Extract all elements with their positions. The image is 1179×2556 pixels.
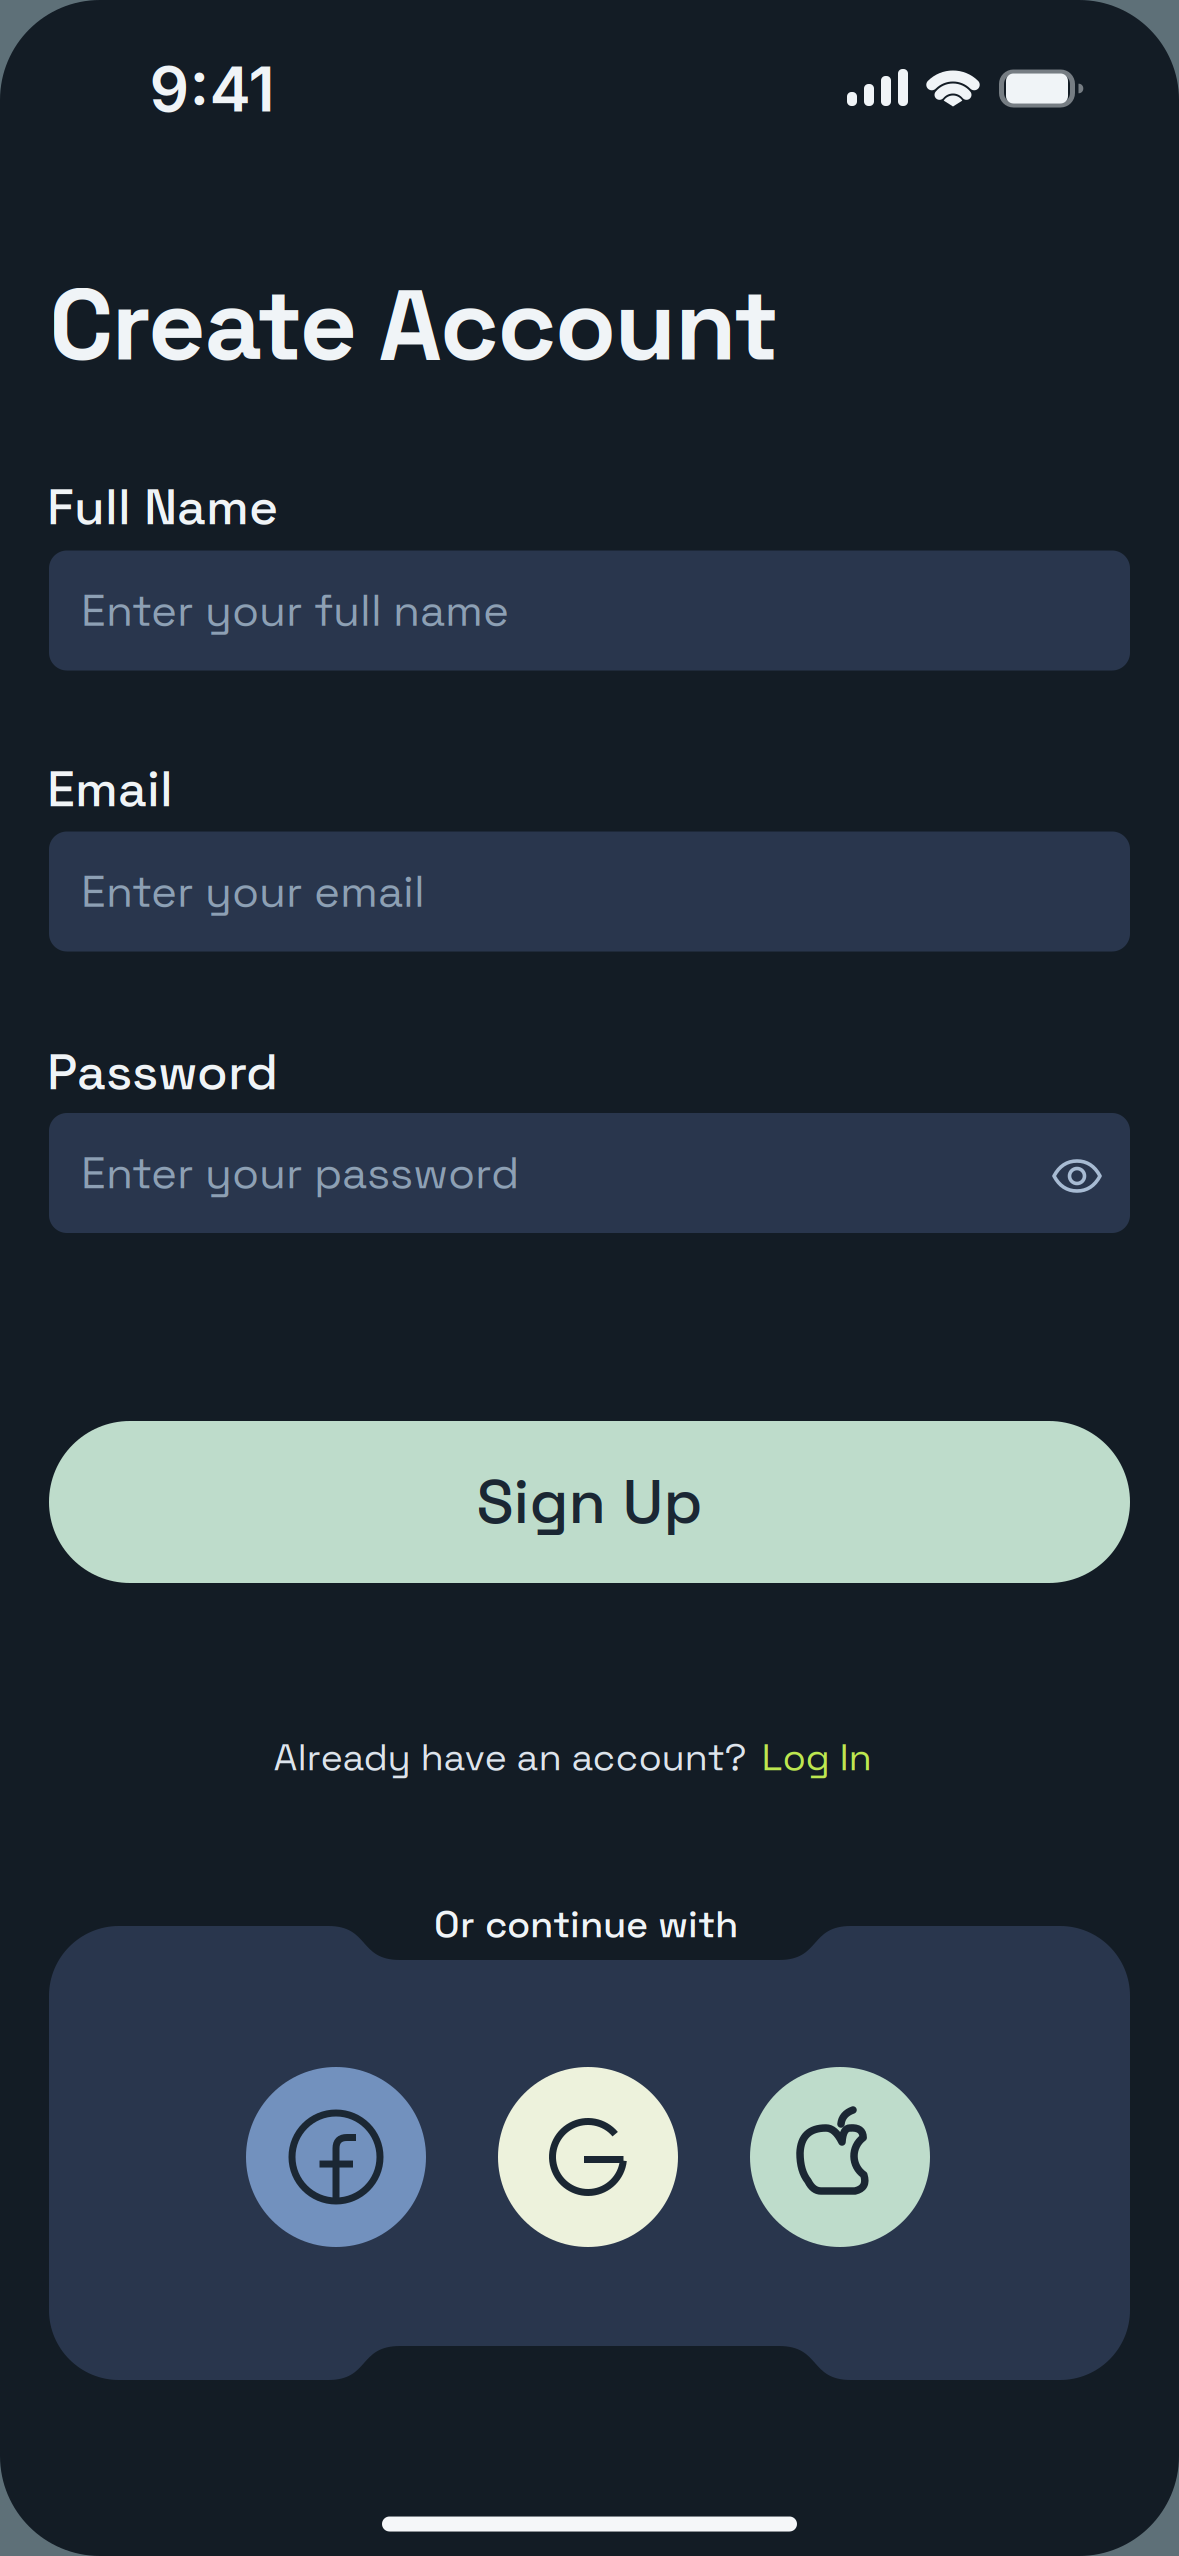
button[interactable]: Show password [1047, 1146, 1107, 1206]
button[interactable]: Continue with Apple [750, 2067, 930, 2247]
staticText: 9:41 [149, 51, 274, 126]
staticText: Or continue with [434, 1900, 738, 1948]
staticText: Sign Up [476, 1463, 702, 1541]
button[interactable]: Sign Up [49, 1421, 1130, 1583]
staticText: Create Account [49, 261, 779, 389]
button[interactable]: Enter your full name [49, 550, 1130, 670]
button[interactable]: Continue with Facebook [246, 2067, 426, 2247]
staticText: Password [47, 1040, 278, 1104]
button[interactable]: Continue with Google [498, 2067, 678, 2247]
staticText: Log In [761, 1733, 871, 1781]
staticText: Already have an account? [273, 1733, 746, 1781]
button[interactable]: Enter your email [49, 831, 1130, 951]
button[interactable]: Enter your password [49, 1113, 1130, 1233]
staticText: Full Name [47, 475, 278, 539]
staticText: Enter your email [81, 863, 425, 919]
staticText: Enter your password [81, 1145, 519, 1201]
staticText: Enter your full name [81, 582, 509, 638]
staticText: Email [47, 757, 173, 821]
button[interactable]: Log In [761, 1733, 871, 1781]
